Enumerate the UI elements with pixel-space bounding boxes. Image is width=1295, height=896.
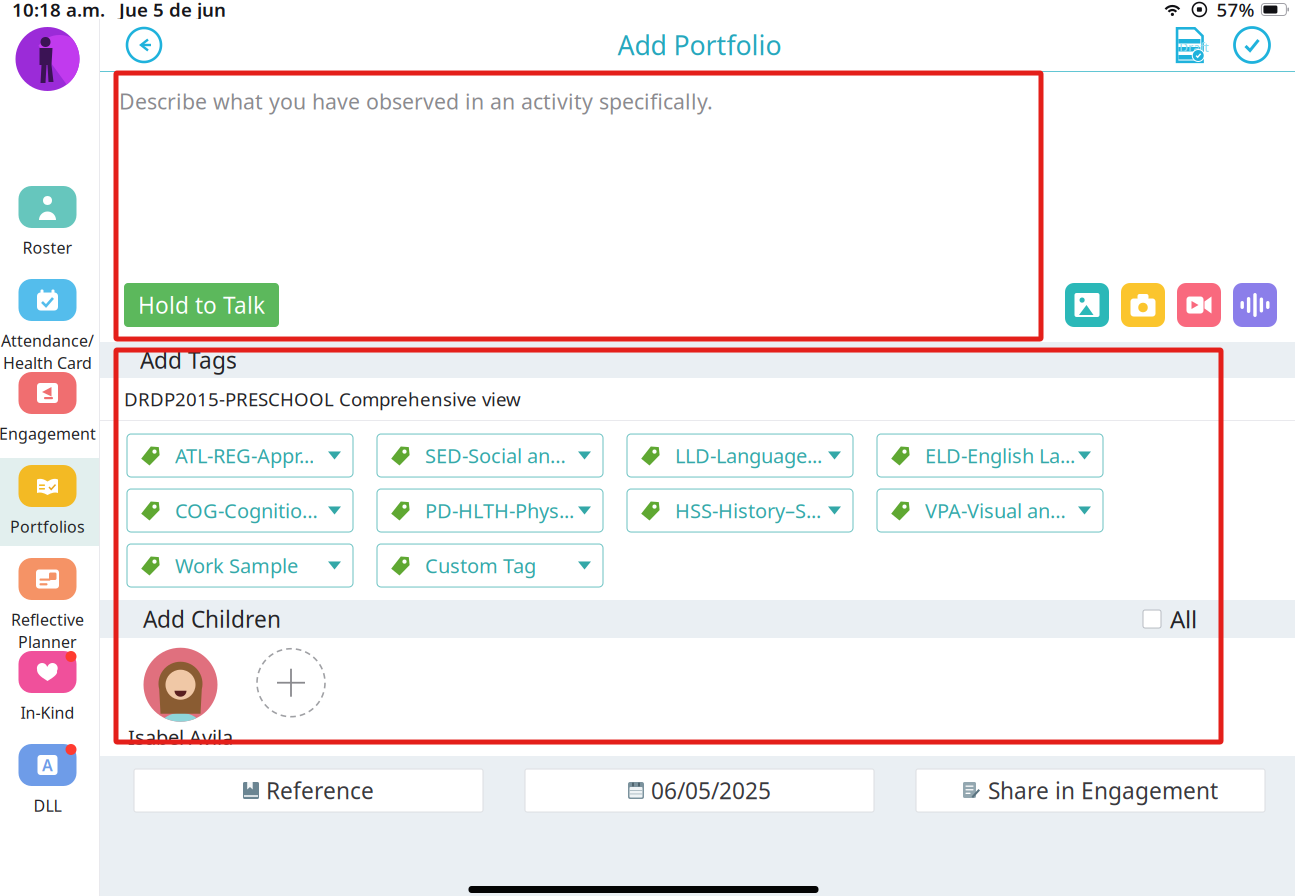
button[interactable]: LLD-Language... bbox=[627, 434, 853, 477]
staticText: DLL bbox=[33, 795, 61, 816]
button[interactable]: SED-Social and... bbox=[377, 434, 603, 477]
button[interactable]: In-Kind bbox=[0, 645, 99, 736]
staticText: VPA-Visual and... bbox=[925, 497, 1075, 524]
button[interactable]: Profile bbox=[15, 27, 79, 91]
button[interactable]: VPA-Visual and... bbox=[877, 489, 1103, 532]
button[interactable]: Record video bbox=[1177, 283, 1221, 327]
staticText: A bbox=[42, 754, 53, 776]
staticText: Add Portfolio bbox=[617, 27, 781, 63]
button[interactable]: Hold to Talk bbox=[124, 283, 279, 327]
staticText: Hold to Talk bbox=[138, 290, 265, 320]
button[interactable]: Engagement bbox=[0, 366, 99, 457]
staticText: ATL-REG-Appr... bbox=[175, 442, 314, 469]
button[interactable]: 06/05/2025 bbox=[525, 769, 874, 812]
staticText: Add Children bbox=[143, 604, 281, 634]
button[interactable]: Record audio bbox=[1233, 283, 1277, 327]
staticText: Share in Engagement bbox=[988, 775, 1218, 805]
staticText: Health Card bbox=[3, 352, 92, 373]
staticText: Reference bbox=[266, 775, 374, 805]
button[interactable]: ATL-REG-Appr... bbox=[127, 434, 353, 477]
staticText: Attendance/ bbox=[1, 330, 94, 351]
staticText: SED-Social and... bbox=[425, 442, 575, 469]
button[interactable]: Done bbox=[1233, 26, 1271, 64]
button[interactable]: Photo library bbox=[1065, 283, 1109, 327]
button[interactable]: Work Sample bbox=[127, 544, 353, 587]
button[interactable]: Back bbox=[125, 26, 163, 64]
button[interactable]: HSS-History–S... bbox=[627, 489, 853, 532]
staticText: ELD-English La... bbox=[925, 442, 1075, 469]
button[interactable]: PD-HLTH-Phys... bbox=[377, 489, 603, 532]
button[interactable]: Custom Tag bbox=[377, 544, 603, 587]
button[interactable]: Portfolios bbox=[0, 459, 99, 550]
button[interactable]: Save draft bbox=[1178, 27, 1207, 63]
button[interactable]: Reflective bbox=[0, 552, 99, 643]
button[interactable]: Reference bbox=[134, 769, 483, 812]
staticText: Portfolios bbox=[10, 516, 85, 537]
staticText: Engagement bbox=[0, 423, 96, 444]
staticText: Roster bbox=[22, 237, 72, 258]
staticText: HSS-History–S... bbox=[675, 497, 821, 524]
button[interactable]: Camera bbox=[1121, 283, 1165, 327]
staticText: Add Tags bbox=[140, 345, 237, 375]
staticText: 06/05/2025 bbox=[651, 775, 771, 805]
button[interactable]: All bbox=[1143, 603, 1197, 635]
staticText: Jue 5 de jun bbox=[119, 0, 226, 22]
button[interactable]: ELD-English La... bbox=[877, 434, 1103, 477]
staticText: Reflective bbox=[11, 609, 84, 630]
button[interactable]: Attendance/ bbox=[0, 273, 99, 364]
staticText: 57% bbox=[1216, 0, 1254, 22]
staticText: Work Sample bbox=[175, 552, 298, 579]
staticText: LLD-Language... bbox=[675, 442, 822, 469]
button[interactable]: Share in Engagement bbox=[916, 769, 1265, 812]
staticText: Planner bbox=[18, 631, 77, 652]
staticText: PD-HLTH-Phys... bbox=[425, 497, 574, 524]
staticText: Draft bbox=[1179, 39, 1209, 55]
staticText: Custom Tag bbox=[425, 552, 536, 579]
button[interactable]: A bbox=[0, 738, 99, 829]
button[interactable]: Add child bbox=[256, 648, 326, 718]
staticText: 10:18 a.m. bbox=[12, 0, 105, 22]
button[interactable]: COG-Cognition... bbox=[127, 489, 353, 532]
staticText: DRDP2015-PRESCHOOL Comprehensive view bbox=[124, 387, 521, 411]
staticText: Isabel Avila bbox=[128, 724, 233, 750]
staticText: All bbox=[1170, 603, 1197, 635]
staticText: COG-Cognition... bbox=[175, 497, 325, 524]
staticText: In-Kind bbox=[20, 702, 74, 723]
staticText: Describe what you have observed in an ac… bbox=[119, 87, 713, 115]
button[interactable]: Roster bbox=[0, 180, 99, 271]
